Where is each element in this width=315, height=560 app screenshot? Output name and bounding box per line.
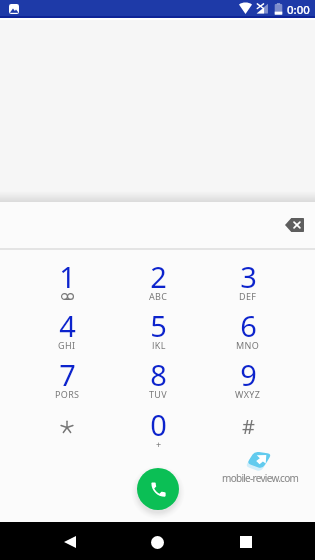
- button[interactable]: Backspace: [277, 207, 311, 243]
- staticText: +: [156, 438, 162, 448]
- staticText: GHI: [58, 339, 76, 349]
- staticText: ABC: [149, 290, 168, 300]
- button[interactable]: Home: [133, 522, 181, 560]
- button[interactable]: Call: [137, 468, 179, 510]
- staticText: WXYZ: [235, 388, 261, 398]
- button[interactable]: 2: [113, 249, 203, 298]
- staticText: 8: [150, 355, 167, 394]
- button[interactable]: 3: [203, 249, 293, 298]
- staticText: 2: [150, 257, 167, 296]
- button[interactable]: [22, 397, 112, 446]
- staticText: DEF: [239, 290, 257, 300]
- button[interactable]: 8: [113, 347, 203, 396]
- staticText: MNO: [236, 339, 260, 349]
- staticText: TUV: [149, 388, 168, 398]
- staticText: 3: [240, 257, 257, 296]
- staticText: 9: [240, 355, 257, 394]
- staticText: 0: [150, 405, 167, 444]
- staticText: 1: [59, 257, 76, 296]
- button[interactable]: 7: [22, 347, 112, 396]
- button[interactable]: 9: [203, 347, 293, 396]
- staticText: mobile-review.com: [222, 471, 299, 485]
- staticText: 0:00: [287, 2, 310, 18]
- button[interactable]: Back: [46, 522, 94, 560]
- staticText: 6: [240, 306, 257, 345]
- staticText: 7: [59, 355, 76, 394]
- button[interactable]: 6: [203, 298, 293, 347]
- staticText: PQRS: [55, 388, 80, 398]
- button[interactable]: 1: [22, 249, 112, 298]
- button[interactable]: 5: [113, 298, 203, 347]
- button[interactable]: 0: [113, 397, 203, 446]
- staticText: 4: [59, 306, 76, 345]
- staticText: JKL: [152, 339, 166, 349]
- button[interactable]: Recents: [222, 522, 270, 560]
- button[interactable]: #: [203, 397, 293, 446]
- button[interactable]: 4: [22, 298, 112, 347]
- staticText: 5: [150, 306, 167, 345]
- staticText: #: [242, 413, 255, 440]
